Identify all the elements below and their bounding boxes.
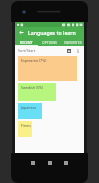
staticText: Languages to learn [28, 29, 76, 36]
button[interactable]: More options [75, 48, 81, 54]
button[interactable]: Swedish (5%) [18, 83, 56, 101]
staticText: Esperanto (7%) [21, 58, 47, 63]
button[interactable]: Back [28, 158, 38, 168]
staticText: FAVORITES [64, 40, 82, 45]
button[interactable]: Esperanto (7%) [18, 56, 77, 81]
button[interactable]: Sort/Start [15, 46, 84, 55]
button[interactable]: Navigate up [17, 28, 26, 37]
button[interactable]: FAVORITES [61, 38, 84, 46]
button[interactable]: Recents [61, 158, 71, 168]
button[interactable]: Finnish (29%) [18, 121, 32, 137]
button[interactable]: RECENT [15, 38, 38, 46]
staticText: Finnish (29%) [21, 123, 32, 128]
button[interactable]: Calendar [66, 48, 72, 54]
staticText: OPTIONS [42, 40, 57, 45]
staticText: Japanese (46%) [21, 105, 42, 110]
staticText: Swedish (5%) [21, 85, 44, 90]
staticText: Sort/Start [18, 48, 36, 53]
staticText: RECENT [20, 40, 33, 45]
button[interactable]: Home [45, 158, 55, 168]
button[interactable]: OPTIONS [38, 38, 61, 46]
button[interactable]: Japanese (46%) [18, 103, 42, 119]
